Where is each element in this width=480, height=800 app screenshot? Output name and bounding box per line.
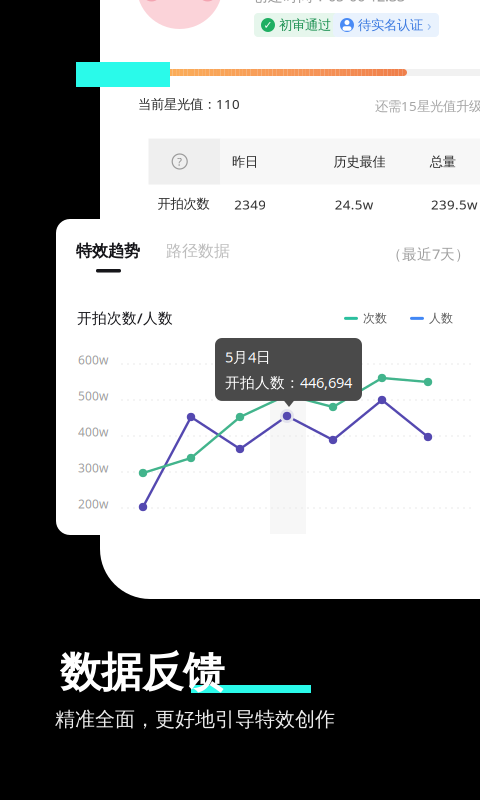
staticText: ✓ [263, 19, 272, 31]
staticText: › [427, 15, 432, 35]
staticText: （最近7天） [387, 244, 470, 263]
staticText: ? [177, 154, 182, 169]
staticText: 24.5w [335, 195, 373, 213]
staticText: 开拍人数：446,694 [225, 372, 352, 392]
staticText: 人数 [429, 311, 453, 326]
staticText: 500w [78, 388, 108, 404]
staticText: 还需15星光值升级 [375, 97, 480, 115]
button[interactable]: ✓ [254, 13, 338, 37]
staticText: 当前星光值：110 [138, 95, 240, 113]
staticText: 创建时间：05-06 12:33 [253, 0, 405, 5]
staticText: 待实名认证 [358, 17, 423, 33]
staticText: 昨日 [232, 153, 258, 170]
staticText: 200w [78, 496, 108, 512]
staticText: 2349 [234, 195, 266, 213]
staticText: 开拍次数 [158, 195, 210, 212]
staticText: 5月4日 [225, 347, 271, 366]
button[interactable]: 待实名认证 [333, 13, 439, 37]
staticText: 数据反馈 [60, 647, 224, 698]
staticText: 精准全面，更好地引导特效创作 [55, 707, 335, 732]
staticText: 400w [78, 424, 108, 440]
staticText: 特效趋势 [76, 241, 140, 261]
button[interactable]: 路径数据 [166, 241, 230, 261]
staticText: 历史最佳 [333, 153, 385, 170]
staticText: 600w [78, 352, 108, 368]
staticText: 开拍次数/人数 [77, 308, 173, 327]
staticText: 路径数据 [166, 241, 230, 261]
staticText: 次数 [363, 311, 387, 326]
staticText: 总量 [430, 153, 456, 170]
staticText: 300w [78, 460, 108, 476]
staticText: 初审通过 [279, 17, 331, 33]
button[interactable]: 特效趋势 [76, 241, 142, 275]
staticText: 239.5w [431, 195, 477, 213]
